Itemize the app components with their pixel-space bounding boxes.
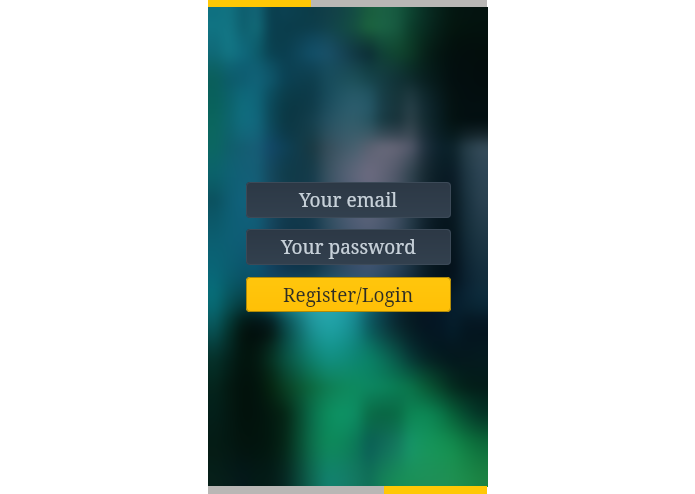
button[interactable]: Register/Login: [246, 277, 451, 312]
staticText: Register/Login: [283, 282, 414, 308]
staticText: Your email: [299, 187, 398, 213]
button[interactable]: Your password: [246, 229, 451, 265]
button[interactable]: Your email: [246, 182, 451, 218]
staticText: Your password: [281, 234, 416, 260]
